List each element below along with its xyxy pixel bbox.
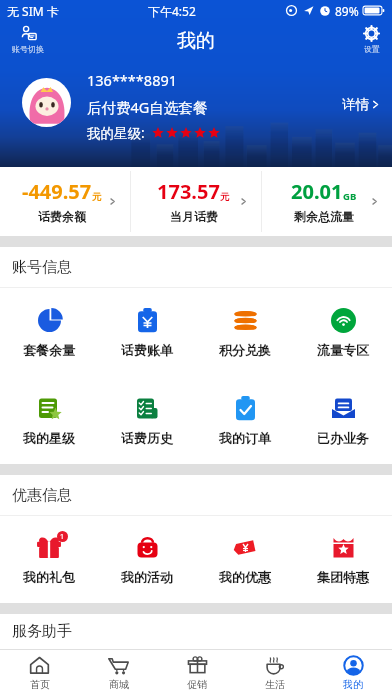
staticText: 设置 [364, 44, 380, 54]
staticText: 后付费4G自选套餐 [87, 97, 208, 117]
button[interactable]: 商城 [79, 650, 158, 696]
button[interactable]: 我的星级 [0, 376, 98, 464]
staticText: 元 [92, 191, 102, 203]
button[interactable]: 173.57 [131, 167, 261, 236]
staticText: 话费账单 [121, 342, 173, 358]
staticText: 89% [335, 3, 359, 19]
staticText: 20.01 [291, 178, 343, 205]
button[interactable]: 套餐余量 [0, 288, 98, 376]
button[interactable]: 流量专区 [294, 288, 392, 376]
staticText: 促销 [187, 678, 207, 691]
staticText: 首页 [30, 678, 50, 691]
button[interactable]: 集团特惠 [294, 516, 392, 603]
staticText: 我的活动 [121, 569, 173, 585]
staticText: 136****8891 [87, 70, 178, 90]
staticText: -449.57 [22, 178, 92, 205]
button[interactable]: 我的活动 [98, 516, 196, 603]
staticText: 我的 [343, 678, 363, 691]
staticText: 账号信息 [12, 258, 72, 277]
staticText: 服务助手 [12, 622, 72, 641]
staticText: 我的优惠 [219, 569, 271, 585]
staticText: 商城 [109, 678, 129, 691]
staticText: 无 SIM 卡 [7, 3, 59, 19]
button[interactable]: 我的订单 [196, 376, 294, 464]
staticText: 话费历史 [121, 430, 173, 446]
staticText: 我的礼包 [23, 569, 75, 585]
button[interactable]: 设置 [359, 23, 384, 56]
staticText: 当月话费 [170, 209, 218, 224]
staticText: 剩余总流量 [294, 209, 354, 224]
button[interactable]: 1 [0, 516, 98, 603]
button[interactable]: 促销 [158, 650, 236, 696]
staticText: 集团特惠 [317, 569, 369, 585]
button[interactable]: -449.57 [0, 167, 130, 236]
staticText: 我的 [177, 29, 215, 53]
button[interactable]: 我的优惠 [196, 516, 294, 603]
staticText: 1 [60, 532, 65, 542]
staticText: 已办业务 [317, 430, 369, 446]
button[interactable]: 我的 [314, 650, 392, 696]
staticText: 我的星级: [87, 124, 145, 142]
button[interactable]: 生活 [236, 650, 314, 696]
staticText: 我的星级 [23, 430, 75, 446]
button[interactable]: 积分兑换 [196, 288, 294, 376]
staticText: 元 [220, 191, 230, 203]
staticText: 我的订单 [219, 430, 271, 446]
button[interactable]: 首页 [0, 650, 79, 696]
staticText: 详情 [342, 96, 369, 113]
button[interactable]: 详情 [338, 93, 386, 116]
staticText: GB [343, 190, 357, 203]
staticText: 流量专区 [317, 342, 369, 358]
button[interactable]: 已办业务 [294, 376, 392, 464]
staticText: 套餐余量 [23, 342, 75, 358]
staticText: 优惠信息 [12, 486, 72, 505]
staticText: 账号切换 [12, 44, 44, 54]
staticText: 话费余额 [38, 209, 86, 224]
button[interactable]: 话费账单 [98, 288, 196, 376]
staticText: 下午4:52 [148, 3, 196, 19]
button[interactable]: 话费历史 [98, 376, 196, 464]
button[interactable]: 20.01 [262, 167, 392, 236]
staticText: 积分兑换 [219, 342, 271, 358]
staticText: 生活 [265, 678, 285, 691]
button[interactable]: 账号切换 [8, 23, 48, 56]
staticText: 173.57 [157, 178, 220, 205]
